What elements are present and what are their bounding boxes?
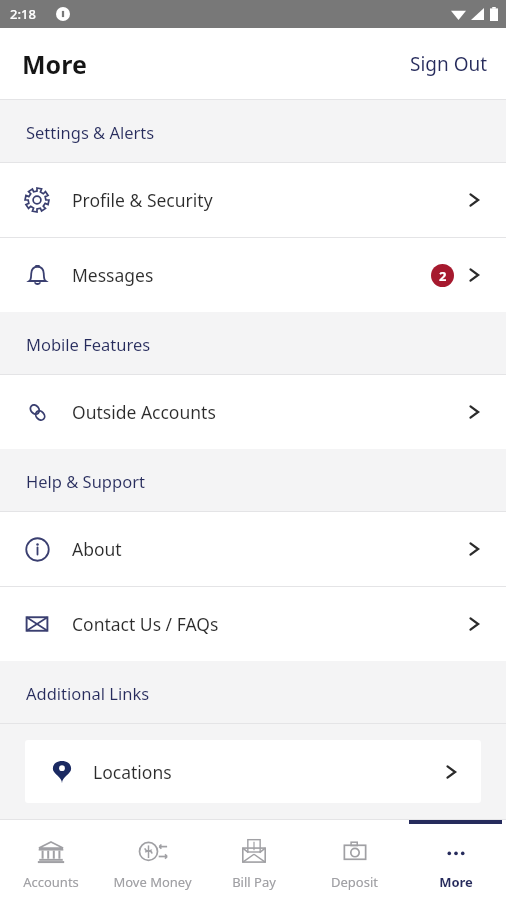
staticText: Sign Out (410, 51, 488, 77)
staticText: Outside Accounts (72, 400, 466, 424)
button[interactable]: Contact Us / FAQs (0, 587, 506, 661)
staticText: More (22, 47, 87, 81)
staticText: 2 (439, 267, 447, 285)
staticText: Bill Pay (232, 873, 276, 891)
button[interactable]: Move Money (102, 820, 203, 900)
staticText: 2:18 (10, 5, 36, 23)
button[interactable]: Locations (25, 740, 481, 803)
button[interactable]: About (0, 512, 506, 586)
staticText: Contact Us / FAQs (72, 612, 466, 636)
staticText: Move Money (113, 873, 192, 891)
staticText: Deposit (331, 873, 378, 891)
staticText: Mobile Features (26, 333, 151, 355)
staticText: About (72, 537, 466, 561)
button[interactable]: Messages (0, 238, 506, 312)
button[interactable]: More (405, 820, 506, 900)
other: Profile and Security (24, 187, 50, 213)
button[interactable]: Outside Accounts (0, 375, 506, 449)
button[interactable]: Profile and Security (0, 163, 506, 237)
staticText: More (439, 873, 473, 891)
staticText: Profile & Security (72, 188, 466, 212)
staticText: Locations (93, 760, 443, 784)
button[interactable]: Bill Pay (203, 820, 304, 900)
staticText: Settings & Alerts (26, 121, 155, 143)
staticText: Additional Links (26, 682, 150, 704)
staticText: Help & Support (26, 470, 145, 492)
button[interactable]: Accounts (0, 820, 102, 900)
staticText: Accounts (23, 873, 79, 891)
button[interactable]: Deposit (304, 820, 405, 900)
button[interactable]: Sign Out (392, 39, 506, 89)
staticText: Messages (72, 263, 431, 287)
